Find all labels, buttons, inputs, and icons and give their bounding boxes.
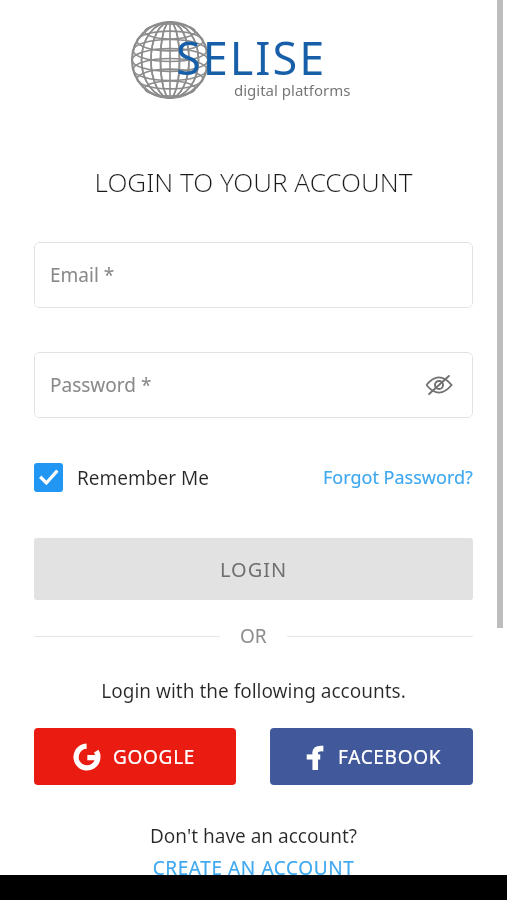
button[interactable]: CREATE AN ACCOUNT <box>0 855 507 881</box>
staticText: LOGIN <box>220 556 288 583</box>
button[interactable]: FACEBOOK <box>270 728 473 785</box>
button[interactable]: Remember Me <box>34 463 209 492</box>
staticText: GOOGLE <box>113 744 196 770</box>
button[interactable]: GOOGLE <box>34 728 236 785</box>
staticText: Don't have an account? <box>0 823 507 849</box>
staticText: LOGIN TO YOUR ACCOUNT <box>0 164 507 199</box>
staticText: OR <box>240 623 267 649</box>
staticText: Email * <box>50 262 115 288</box>
staticText: Login with the following accounts. <box>0 678 507 704</box>
staticText: Remember Me <box>77 465 209 491</box>
button[interactable]: Forgot Password? <box>323 465 473 490</box>
staticText: Forgot Password? <box>323 465 473 490</box>
staticText: CREATE AN ACCOUNT <box>0 855 507 881</box>
staticText: digital platforms <box>234 80 351 100</box>
button[interactable]: Show password <box>419 365 459 405</box>
staticText: FACEBOOK <box>338 744 442 770</box>
staticText: SELISE <box>176 27 327 88</box>
button[interactable]: Email * <box>34 242 473 308</box>
staticText: Password * <box>50 372 152 398</box>
button[interactable]: LOGIN <box>34 538 473 600</box>
